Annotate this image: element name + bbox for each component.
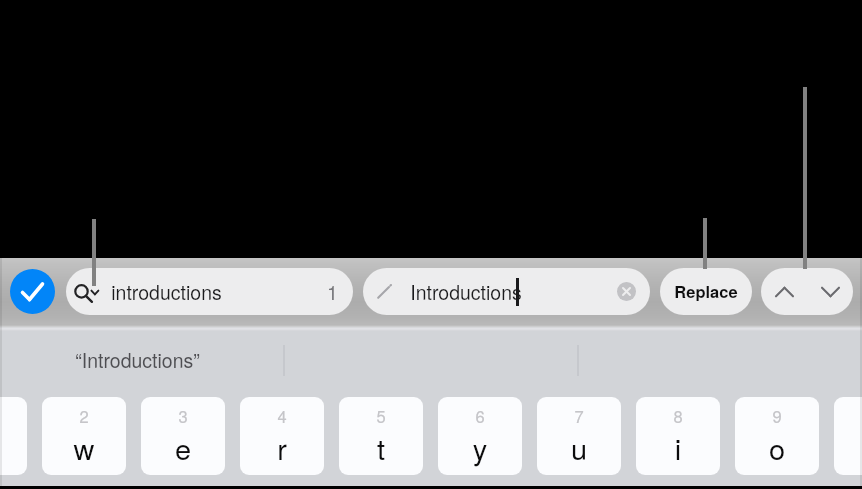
button[interactable]: 1 [0, 397, 27, 475]
staticText: Replace [674, 279, 738, 303]
staticText: 3 [141, 404, 225, 428]
button[interactable]: Done [10, 269, 55, 314]
staticText: 1 [0, 404, 27, 428]
button[interactable]: Clear text [617, 282, 636, 301]
staticText: q [0, 427, 27, 469]
staticText: p [834, 427, 862, 469]
button[interactable]: Replace [660, 268, 752, 315]
button[interactable]: Previous result [761, 268, 807, 315]
staticText: w [42, 427, 126, 469]
button[interactable]: introductions [66, 268, 353, 315]
staticText: 7 [537, 404, 621, 428]
button[interactable]: Next result [807, 268, 853, 315]
staticText: y [438, 427, 522, 469]
staticText: t [339, 427, 423, 469]
staticText: 4 [240, 404, 324, 428]
button[interactable]: 6 [438, 397, 522, 475]
button[interactable]: Introductions [363, 268, 650, 315]
staticText: Introductions [410, 278, 522, 306]
staticText: 2 [42, 404, 126, 428]
button[interactable]: 0 [834, 397, 862, 475]
button[interactable]: 7 [537, 397, 621, 475]
button[interactable]: 5 [339, 397, 423, 475]
staticText: 9 [735, 404, 819, 428]
staticText: 5 [339, 404, 423, 428]
staticText: i [636, 427, 720, 469]
staticText: 1 [327, 278, 338, 306]
staticText: 6 [438, 404, 522, 428]
button[interactable]: 3 [141, 397, 225, 475]
button[interactable]: 8 [636, 397, 720, 475]
staticText: 0 [834, 404, 862, 428]
staticText: 8 [636, 404, 720, 428]
button[interactable]: 4 [240, 397, 324, 475]
staticText: o [735, 427, 819, 469]
staticText: u [537, 427, 621, 469]
staticText: “Introductions” [75, 346, 200, 374]
button[interactable]: 2 [42, 397, 126, 475]
staticText: e [141, 427, 225, 469]
button[interactable]: “Introductions” [0, 329, 275, 391]
staticText: r [240, 427, 324, 469]
staticText: introductions [111, 278, 222, 306]
button[interactable]: 9 [735, 397, 819, 475]
